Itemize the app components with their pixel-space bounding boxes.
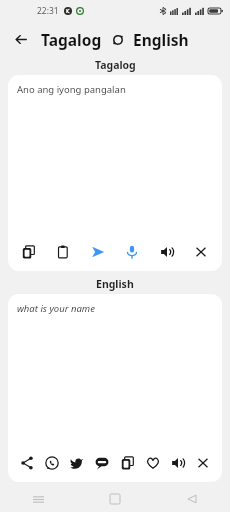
button[interactable]: Clear xyxy=(193,453,213,473)
button[interactable]: Recent apps xyxy=(0,486,76,512)
staticText: Ano ang iyong pangalan xyxy=(17,83,126,96)
button[interactable]: Translate xyxy=(88,242,108,262)
button[interactable]: Listen xyxy=(157,242,177,262)
button[interactable]: Home xyxy=(76,486,153,512)
button[interactable]: Share xyxy=(17,453,37,473)
button[interactable]: WhatsApp xyxy=(42,453,62,473)
button[interactable]: Favorite xyxy=(143,453,163,473)
button[interactable]: Speak xyxy=(122,242,142,262)
button[interactable]: Back xyxy=(153,486,230,512)
staticText: Tagalog xyxy=(41,29,102,50)
button[interactable]: Back xyxy=(8,26,34,52)
staticText: 22:31 xyxy=(37,5,59,17)
button[interactable]: Twitter xyxy=(67,453,87,473)
staticText: what is your name xyxy=(17,302,95,315)
button[interactable]: Copy xyxy=(19,242,39,262)
staticText: Tagalog xyxy=(95,58,136,72)
button[interactable]: Listen xyxy=(168,453,188,473)
button[interactable]: SMS xyxy=(92,453,112,473)
staticText: English xyxy=(96,277,134,291)
button[interactable]: Swap languages xyxy=(108,30,128,50)
button[interactable]: Paste xyxy=(53,242,73,262)
button[interactable]: Clear xyxy=(191,242,211,262)
button[interactable]: Copy xyxy=(118,453,138,473)
staticText: English xyxy=(133,29,189,50)
